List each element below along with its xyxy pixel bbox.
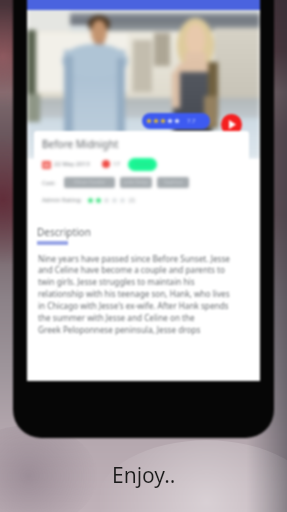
staticText: Nine years have passed since Before Suns… — [38, 253, 236, 336]
staticText: Description — [37, 225, 91, 239]
staticText: Cast: — [42, 179, 56, 187]
button[interactable]: Julie Delpy — [120, 177, 152, 188]
staticText: Before Midnight — [42, 137, 119, 151]
staticText: Admin Rating: — [42, 196, 82, 204]
button[interactable]: Ethan Hawke — [64, 177, 115, 188]
button[interactable]: Play trailer — [221, 114, 242, 135]
staticText: 22 May 2013 — [54, 160, 90, 168]
staticText: 7.7 — [187, 117, 196, 125]
button[interactable]: 7.7 — [142, 113, 210, 129]
button[interactable]: Drama — [128, 158, 157, 171]
button[interactable]: Seamus — [157, 177, 189, 188]
staticText: Enjoy.. — [112, 461, 176, 490]
staticText: 17 — [113, 160, 120, 168]
staticText: (2) — [129, 197, 135, 204]
